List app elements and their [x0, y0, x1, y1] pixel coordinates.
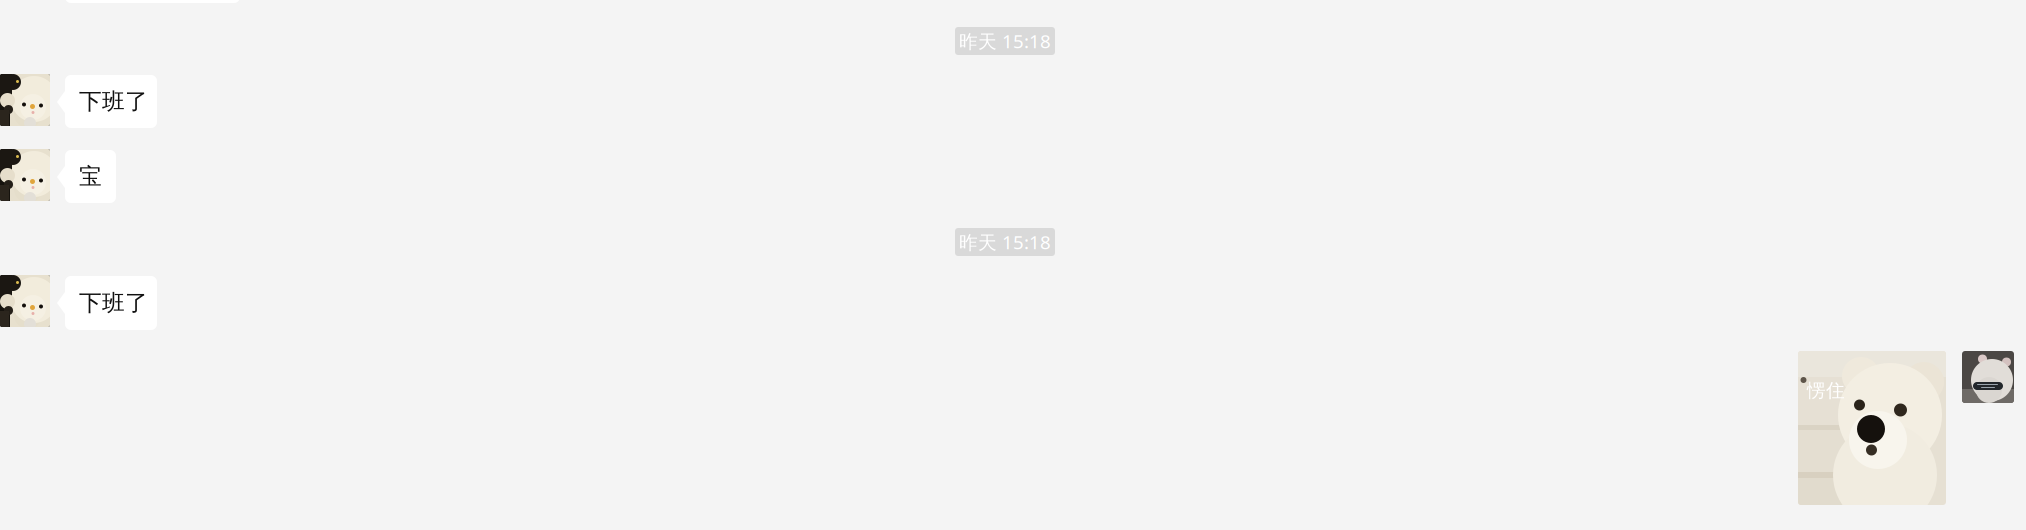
button[interactable]: Contact avatar: [0, 74, 50, 126]
staticText: 下班了: [79, 289, 148, 317]
button[interactable]: Contact avatar: [0, 275, 50, 327]
staticText: 昨天 15:18: [959, 230, 1051, 254]
button[interactable]: 下班了: [57, 276, 157, 330]
staticText: 昨天 15:18: [959, 29, 1051, 53]
staticText: 宝: [79, 163, 102, 190]
button[interactable]: Photo message: sticker: [1962, 351, 2014, 403]
button[interactable]: 下班了: [57, 75, 157, 128]
button[interactable]: Contact avatar: [0, 149, 50, 201]
button[interactable]: 宝: [57, 150, 116, 203]
staticText: 愣住: [1807, 379, 1845, 402]
button[interactable]: Photo message: dog: [1798, 351, 1946, 505]
staticText: 下班了: [79, 88, 148, 115]
